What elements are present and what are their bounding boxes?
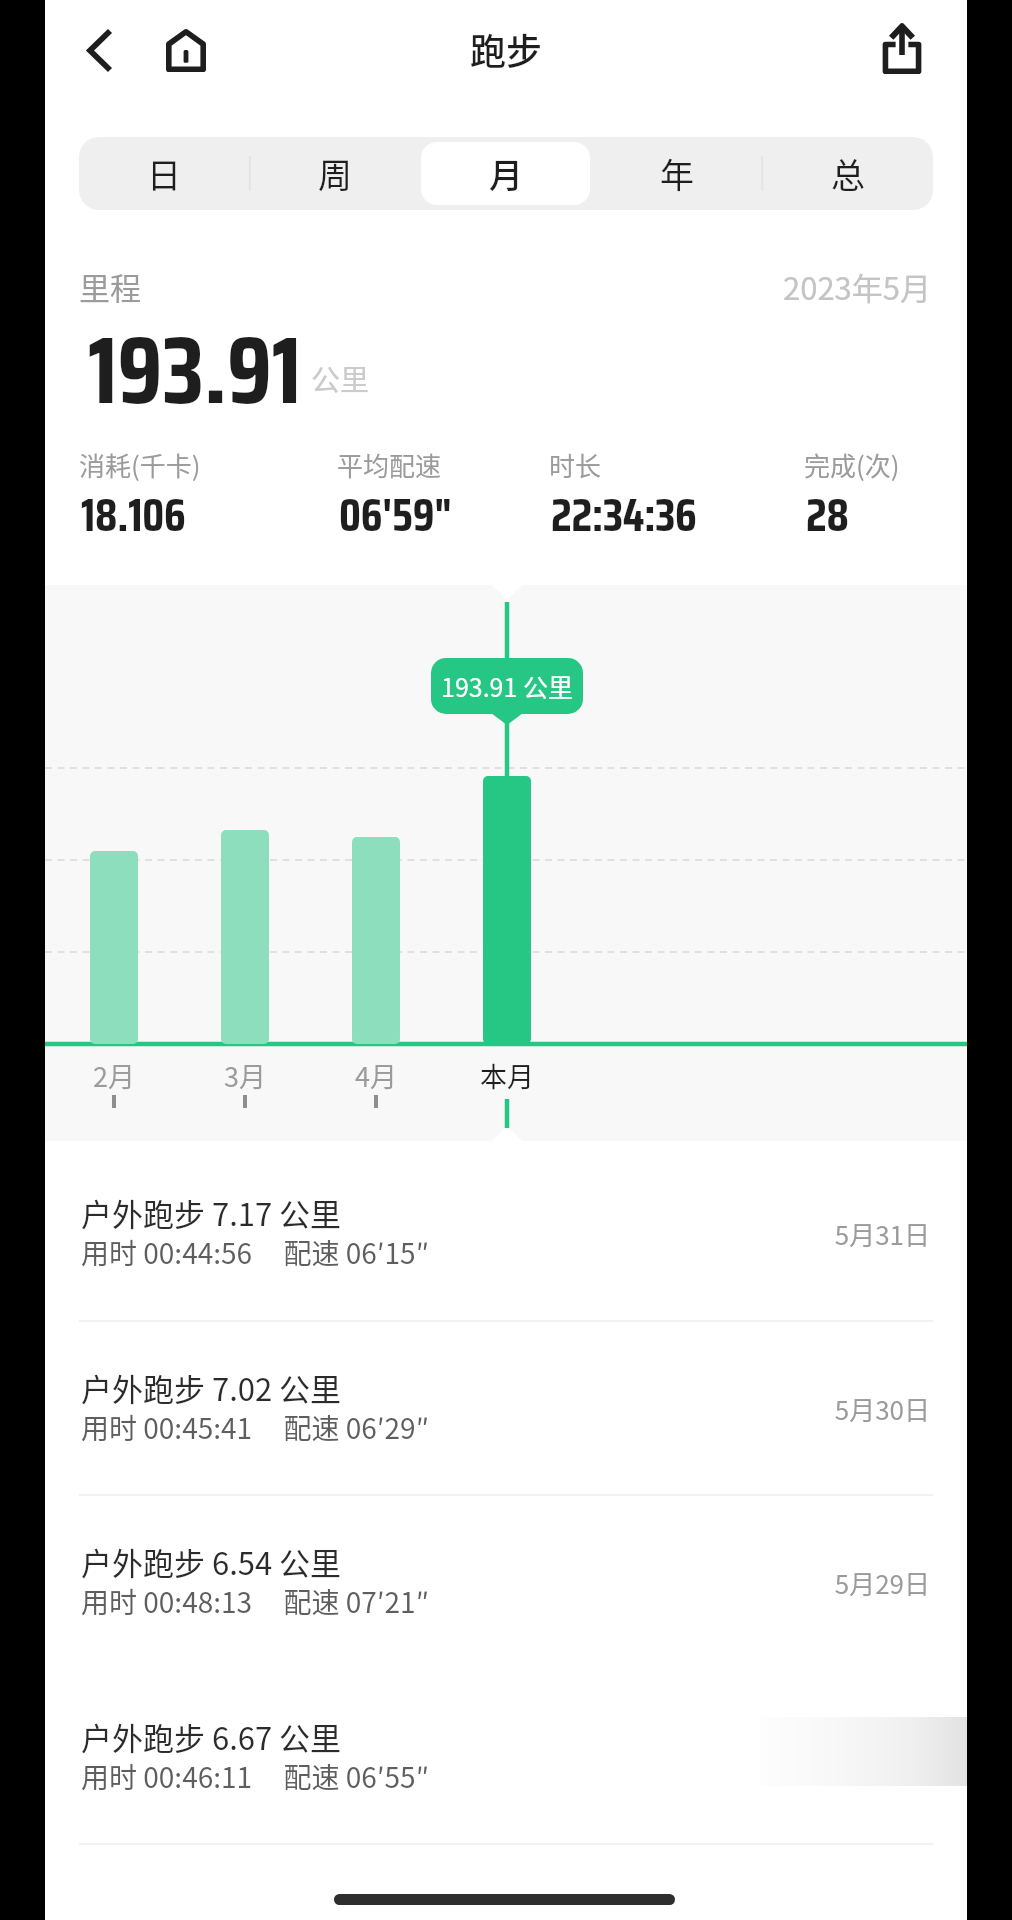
staticText: 5月29日 xyxy=(45,1564,930,1602)
staticText: 本月 xyxy=(480,1056,534,1095)
staticText: 完成(次) xyxy=(804,446,900,484)
button[interactable]: 月 xyxy=(421,142,590,205)
button[interactable]: 总 xyxy=(763,142,932,205)
staticText: 年 xyxy=(660,149,694,198)
button[interactable]: 户外跑步 6.67 公里 xyxy=(45,1670,967,1845)
button[interactable]: 户外跑步 6.54 公里 xyxy=(45,1495,967,1670)
button[interactable]: Share xyxy=(858,5,946,93)
staticText: 28 xyxy=(806,479,849,551)
staticText: 平均配速 xyxy=(337,446,442,484)
button[interactable]: 日 xyxy=(80,142,248,205)
staticText: 22:34:36 xyxy=(551,479,697,551)
staticText: 5月31日 xyxy=(45,1215,930,1253)
staticText: 193.91 xyxy=(88,295,302,445)
staticText: 户外跑步 7.17 公里 xyxy=(81,1190,342,1235)
button[interactable]: 户外跑步 7.02 公里 xyxy=(45,1321,967,1496)
button[interactable]: 年 xyxy=(592,142,761,205)
button[interactable]: Home xyxy=(142,6,230,94)
staticText: 户外跑步 6.54 公里 xyxy=(81,1539,342,1584)
staticText: 月 xyxy=(489,149,523,198)
staticText: 跑步 xyxy=(470,23,543,75)
staticText: 公里 xyxy=(311,357,370,399)
staticText: 5月30日 xyxy=(45,1390,930,1428)
staticText: 2月 xyxy=(93,1056,135,1095)
staticText: 06'59" xyxy=(339,479,452,551)
staticText: 193.91 公里 xyxy=(441,668,573,704)
button[interactable]: Back xyxy=(56,6,144,94)
staticText: 用时 00:45:41 配速 06′29″ xyxy=(81,1407,429,1448)
staticText: 周 xyxy=(318,149,352,198)
staticText: 时长 xyxy=(549,446,602,484)
staticText: 户外跑步 7.02 公里 xyxy=(81,1365,342,1410)
staticText: 消耗(千卡) xyxy=(79,446,201,484)
staticText: 18.106 xyxy=(81,479,186,551)
staticText: 用时 00:46:11 配速 06′55″ xyxy=(81,1756,429,1797)
staticText: 用时 00:48:13 配速 07′21″ xyxy=(81,1581,429,1622)
staticText: 3月 xyxy=(224,1056,266,1095)
staticText: 4月 xyxy=(355,1056,397,1095)
button[interactable]: 户外跑步 7.17 公里 xyxy=(45,1146,967,1321)
button[interactable]: 周 xyxy=(250,142,419,205)
staticText: 2023年5月 xyxy=(45,264,931,309)
staticText: 日 xyxy=(147,149,181,198)
staticText: 总 xyxy=(831,149,865,198)
staticText: 里程 xyxy=(79,264,141,309)
staticText: 用时 00:44:56 配速 06′15″ xyxy=(81,1232,429,1273)
staticText: 户外跑步 6.67 公里 xyxy=(81,1714,342,1759)
